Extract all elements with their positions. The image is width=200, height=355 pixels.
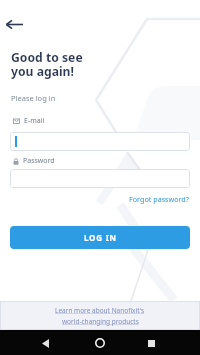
button[interactable] <box>10 132 190 151</box>
button[interactable] <box>0 16 28 32</box>
staticText: E-mail <box>24 116 45 126</box>
button[interactable]: Forgot password? <box>129 194 189 204</box>
staticText: world-changing products <box>62 317 139 326</box>
button[interactable] <box>10 169 190 188</box>
staticText: LOG IN <box>84 232 117 243</box>
staticText: Learn more about Nanofixit's <box>55 306 145 315</box>
button[interactable] <box>38 336 52 350</box>
staticText: Good to see you again! <box>11 49 83 80</box>
button[interactable]: LOG IN <box>10 226 190 249</box>
button[interactable] <box>144 336 158 350</box>
button[interactable]: Learn more about Nanofixit's <box>0 301 200 330</box>
button[interactable] <box>93 336 107 350</box>
staticText: Please log in <box>11 93 56 103</box>
staticText: Forgot password? <box>129 194 189 204</box>
staticText: Password <box>23 156 55 166</box>
